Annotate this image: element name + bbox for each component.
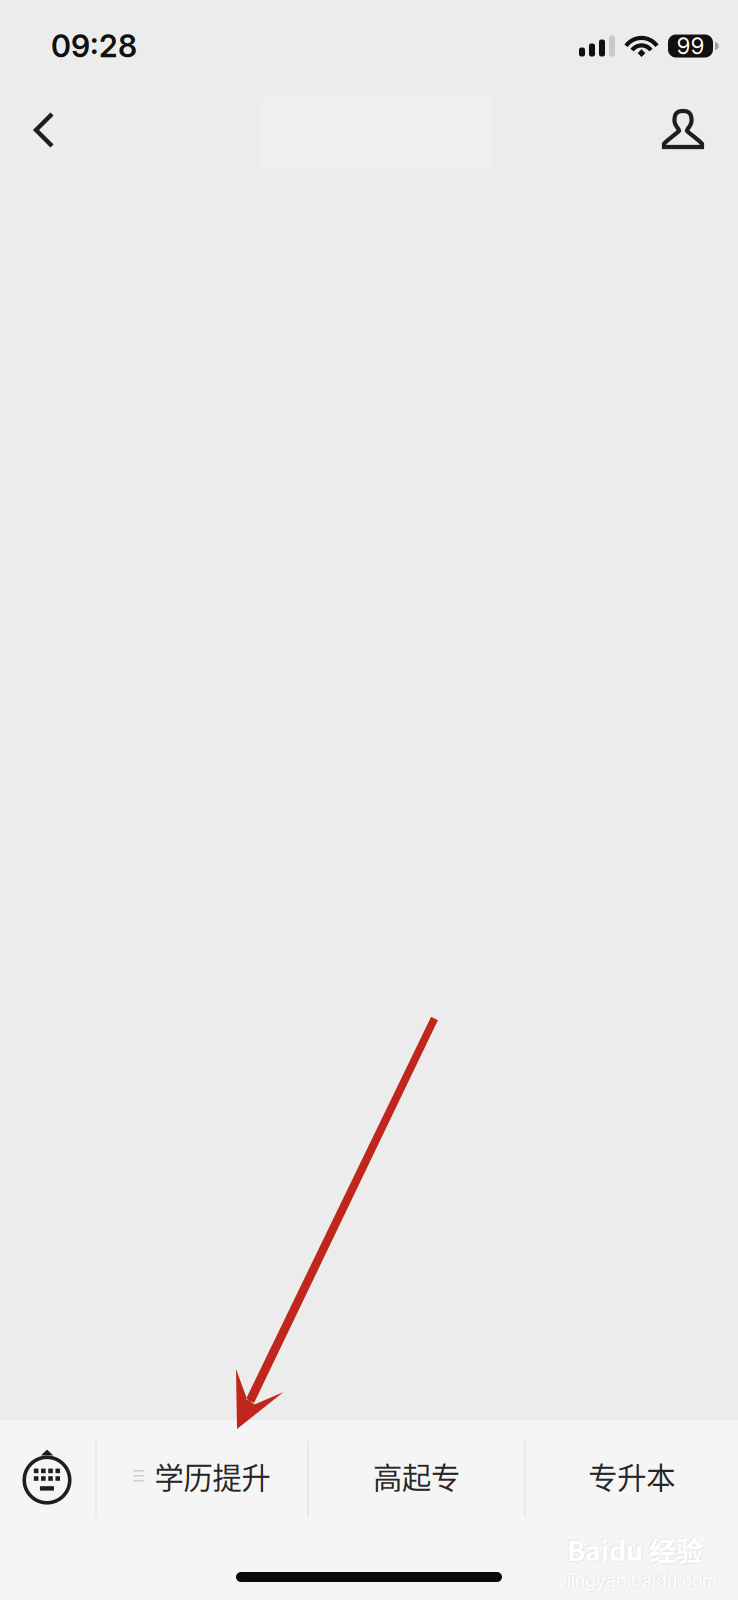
staticText: 高起专 [373,1455,460,1497]
staticText: jingyan.baidu.com [566,1568,716,1589]
staticText: Baidu 经验 [568,1531,704,1570]
staticText: Baidu 经验 [566,1529,702,1567]
button[interactable]: Back [0,59,93,159]
button[interactable]: 学历提升 [97,1420,307,1532]
button[interactable]: 专升本 [526,1420,738,1532]
staticText: 09:28 [51,27,137,64]
staticText: 学历提升 [154,1455,270,1497]
staticText: jingyan.baidu.com [567,1570,717,1591]
staticText: 专升本 [588,1455,675,1497]
button[interactable]: Profile [636,59,735,160]
staticText: jingyan.baidu.com [568,1571,718,1592]
button[interactable]: 高起专 [309,1420,524,1532]
button[interactable]: Keyboard [0,1420,95,1532]
staticText: Baidu 经验 [567,1530,703,1569]
staticText: 99 [676,32,704,60]
